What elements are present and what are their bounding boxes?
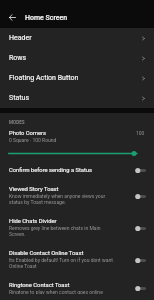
staticText: Floating Action Button <box>9 74 141 82</box>
button[interactable]: Photo Corners <box>0 125 154 161</box>
staticText: MODES <box>9 120 25 125</box>
staticText: Disable Contact Online Toast <box>9 250 84 257</box>
staticText: Rows <box>9 54 141 62</box>
button[interactable]: Navigate up <box>0 8 25 27</box>
button[interactable]: Status <box>0 88 154 108</box>
button[interactable]: Hide Chats Divider <box>0 212 154 244</box>
button[interactable]: Ringtone Contact Toast <box>0 276 154 300</box>
button[interactable]: Disable Contact Online Toast <box>0 244 154 276</box>
button[interactable]: Confirm before sending a Status <box>0 161 154 180</box>
staticText: Viewed Story Toast <box>9 186 59 193</box>
button[interactable]: Header <box>0 28 154 48</box>
other: Toggle setting <box>135 285 146 292</box>
staticText: Photo Corners <box>9 130 47 137</box>
button[interactable]: Floating Action Button <box>0 68 154 88</box>
staticText: Its Enabled by default! Turn on if you d… <box>9 257 113 270</box>
staticText: 100 <box>136 130 145 136</box>
button[interactable]: Viewed Story Toast <box>0 180 154 212</box>
button[interactable]: Rows <box>0 48 154 68</box>
other: Toggle setting <box>135 167 146 174</box>
other: Toggle setting <box>135 193 146 200</box>
staticText: Ringtone Contact Toast <box>9 282 70 289</box>
staticText: Hide Chats Divider <box>9 218 57 225</box>
other: Toggle setting <box>135 257 146 264</box>
other: Toggle setting <box>135 225 146 232</box>
staticText: Ringtone to play when contact goes onlin… <box>9 289 103 294</box>
staticText: 0 Square · 100 Round <box>9 137 57 143</box>
staticText: Removes grey line between chats in Main … <box>9 225 113 238</box>
staticText: Status <box>9 94 141 102</box>
staticText: Header <box>9 34 141 42</box>
staticText: Know immediately when anyone views your … <box>9 193 113 206</box>
staticText: Home Screen <box>25 14 68 22</box>
staticText: Confirm before sending a Status <box>9 167 93 174</box>
